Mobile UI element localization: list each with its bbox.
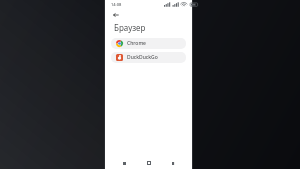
button[interactable]: Back xyxy=(119,158,129,168)
staticText: Браузер xyxy=(114,22,146,33)
button[interactable]: DuckDuckGo xyxy=(111,52,186,63)
staticText: 14:08 xyxy=(111,2,122,7)
staticText: DuckDuckGo xyxy=(127,54,158,61)
button[interactable]: Back xyxy=(111,10,121,20)
staticText: Chrome xyxy=(127,40,146,47)
button[interactable]: Home xyxy=(144,158,154,168)
button[interactable]: Recent apps xyxy=(168,158,178,168)
button[interactable]: Chrome xyxy=(111,38,186,49)
